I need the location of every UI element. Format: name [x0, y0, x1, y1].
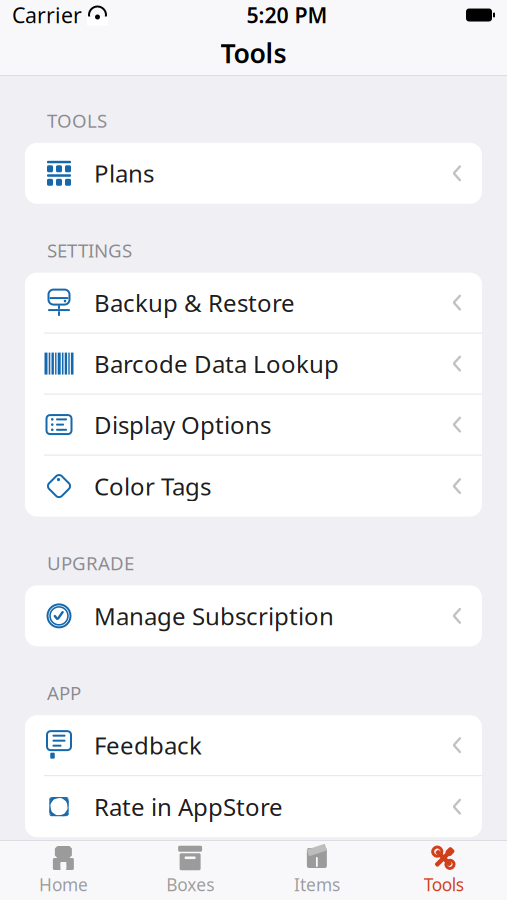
staticText: Backup & Restore	[94, 287, 295, 318]
staticText: Boxes	[166, 873, 214, 896]
staticText: TOOLS	[47, 108, 107, 133]
staticText: Carrier	[12, 1, 82, 29]
button[interactable]: Plans	[25, 143, 482, 204]
staticText: APP	[47, 680, 81, 705]
button[interactable]: Feedback	[25, 715, 482, 776]
button[interactable]: Home	[0, 840, 127, 900]
button[interactable]: Boxes	[127, 840, 254, 900]
staticText: 5:20 PM	[246, 1, 327, 29]
staticText: UPGRADE	[47, 551, 134, 575]
staticText: Barcode Data Lookup	[94, 348, 339, 379]
button[interactable]: Tools	[380, 840, 507, 900]
button[interactable]: Display Options	[25, 395, 482, 456]
staticText: Color Tags	[94, 470, 211, 502]
staticText: SETTINGS	[47, 238, 132, 263]
staticText: Home	[39, 873, 88, 896]
button[interactable]: Backup & Restore	[25, 273, 482, 334]
staticText: Display Options	[94, 409, 271, 440]
staticText: Tools	[424, 873, 464, 896]
button[interactable]: Items	[253, 840, 380, 900]
button[interactable]: Color Tags	[25, 456, 482, 517]
staticText: Tools	[220, 35, 286, 71]
staticText: Rate in AppStore	[94, 791, 283, 823]
staticText: Items	[294, 873, 340, 896]
button[interactable]: Barcode Data Lookup	[25, 334, 482, 395]
staticText: Feedback	[94, 729, 202, 761]
staticText: Plans	[94, 157, 154, 189]
button[interactable]: Rate in AppStore	[25, 776, 482, 837]
button[interactable]: Manage Subscription	[25, 585, 482, 646]
staticText: Manage Subscription	[94, 600, 334, 632]
